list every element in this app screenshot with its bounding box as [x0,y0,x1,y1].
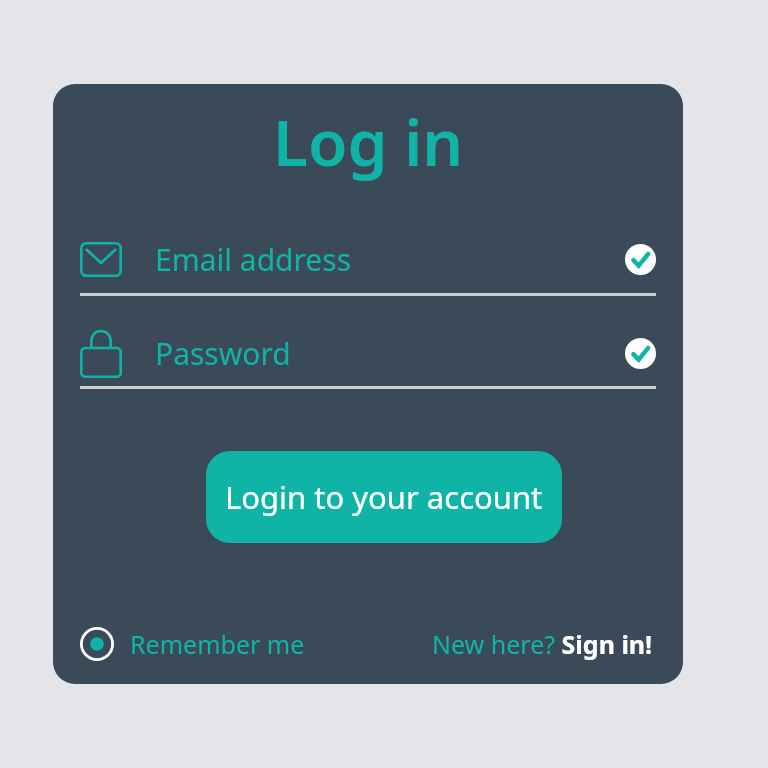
staticText: Login to your account [225,476,543,518]
staticText: Email address [155,239,625,280]
button[interactable]: Remember me [80,627,305,661]
button[interactable]: Login to your account [206,451,562,543]
staticText: Log in [273,98,464,185]
staticText: New here? Sign in! [432,627,653,661]
button[interactable]: New here? Sign in! [432,627,653,661]
staticText: Remember me [130,627,305,661]
staticText: Password [155,333,625,374]
button[interactable]: Password [80,328,656,378]
button[interactable]: Email address [80,239,656,280]
